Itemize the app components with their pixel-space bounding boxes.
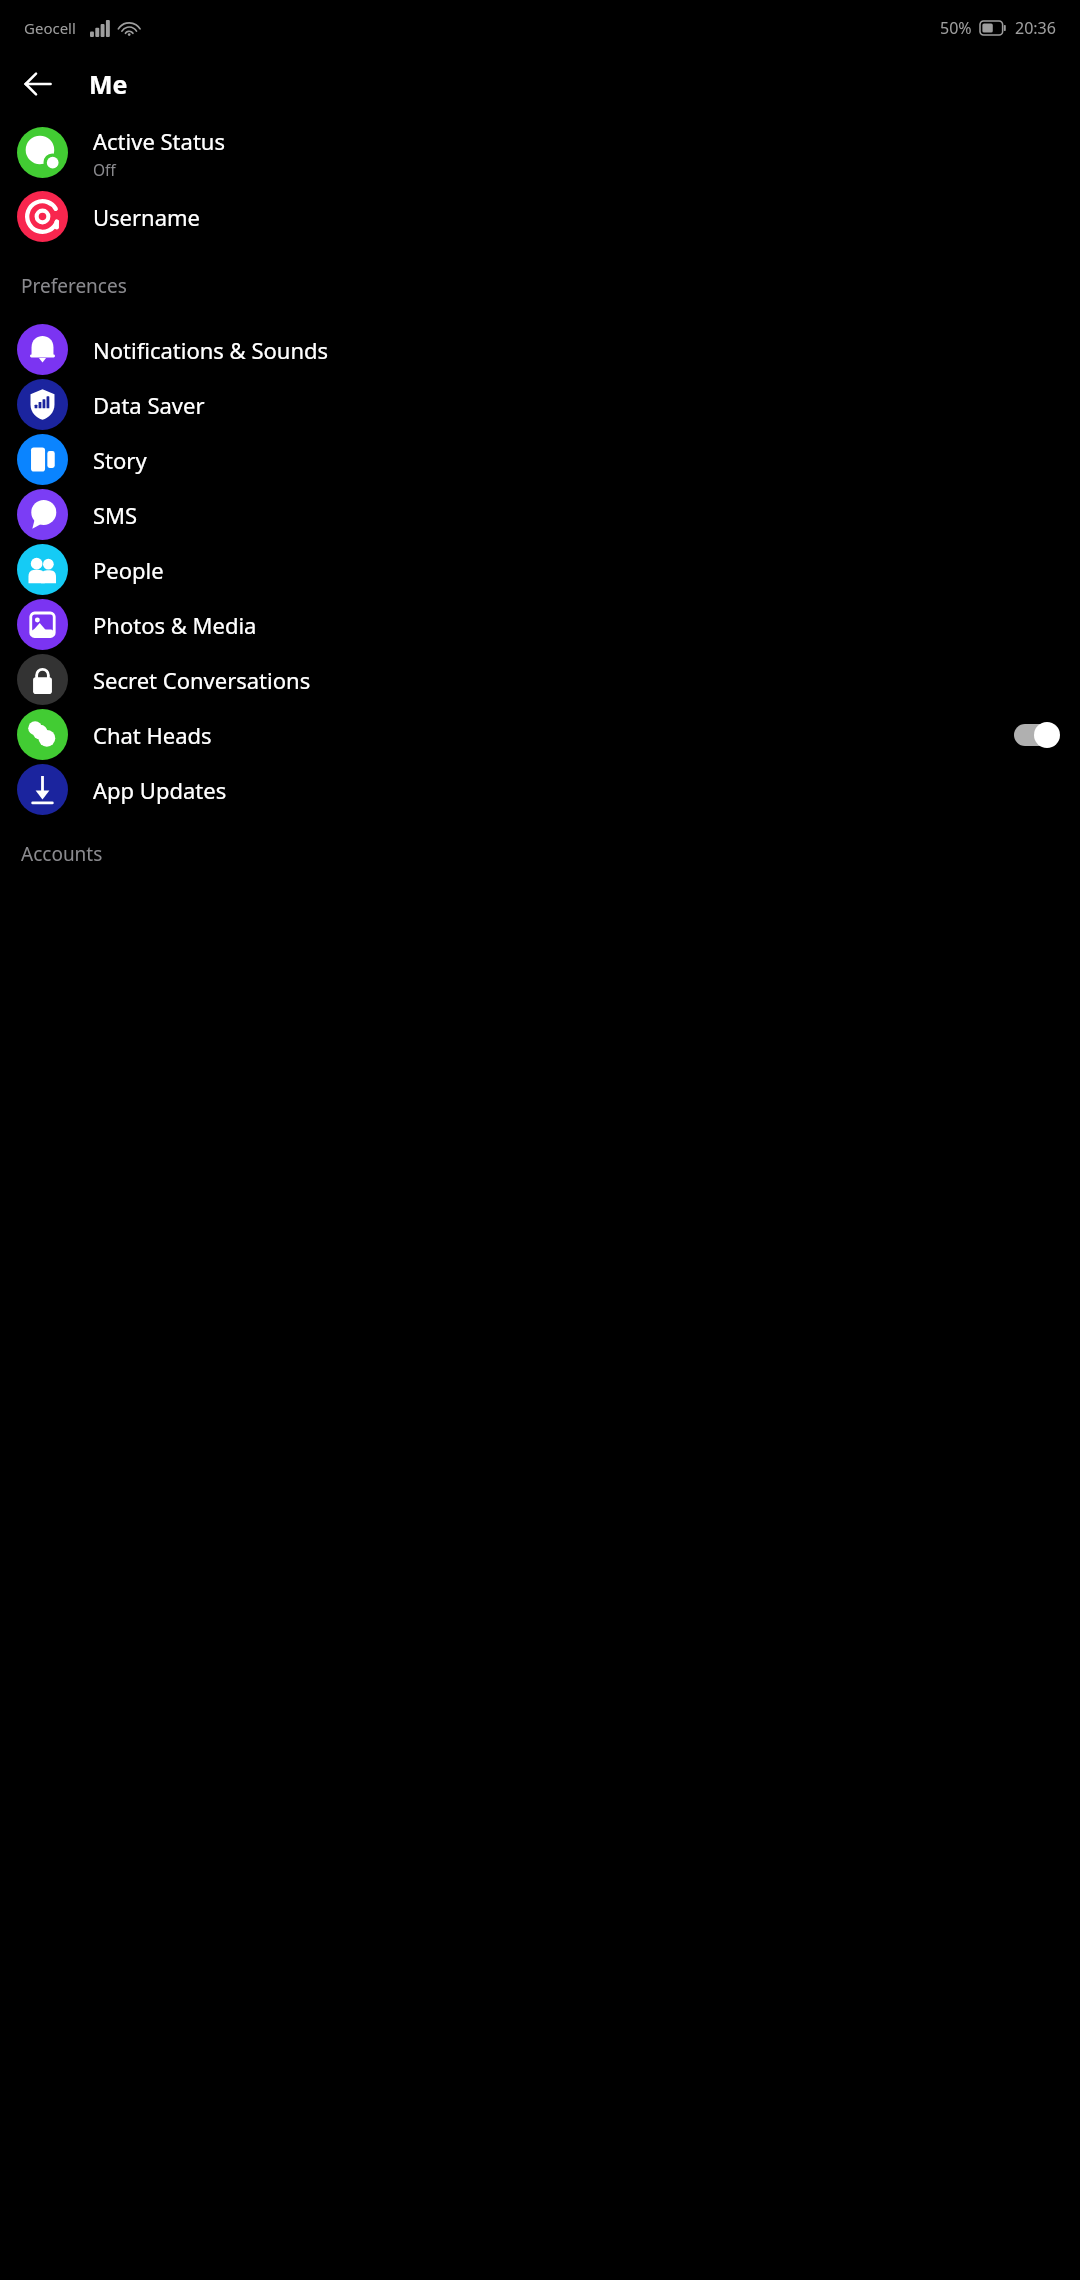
button[interactable]: Chat Heads bbox=[0, 707, 1080, 762]
button[interactable]: SMS bbox=[0, 487, 1080, 542]
staticText: Chat Heads bbox=[93, 720, 212, 750]
button[interactable]: Notifications & Sounds bbox=[0, 322, 1080, 377]
button[interactable]: Data Saver bbox=[0, 377, 1080, 432]
staticText: People bbox=[93, 555, 164, 585]
staticText: Active Status bbox=[93, 126, 225, 156]
staticText: 20:36 bbox=[1015, 17, 1056, 39]
button[interactable]: Photos & Media bbox=[0, 597, 1080, 652]
staticText: Notifications & Sounds bbox=[93, 335, 329, 365]
staticText: Me bbox=[89, 67, 128, 101]
staticText: SMS bbox=[93, 500, 138, 530]
staticText: Off bbox=[93, 159, 116, 180]
staticText: Story bbox=[93, 445, 147, 475]
button[interactable]: Active Status bbox=[0, 120, 1080, 185]
button[interactable]: Story bbox=[0, 432, 1080, 487]
staticText: Geocell bbox=[24, 18, 76, 38]
button[interactable]: Back bbox=[12, 58, 64, 110]
staticText: 50% bbox=[940, 17, 972, 39]
staticText: Username bbox=[93, 202, 201, 232]
button[interactable]: Secret Conversations bbox=[0, 652, 1080, 707]
staticText: Data Saver bbox=[93, 390, 205, 420]
staticText: Secret Conversations bbox=[93, 665, 311, 695]
button[interactable]: People bbox=[0, 542, 1080, 597]
staticText: Photos & Media bbox=[93, 610, 257, 640]
staticText: Accounts bbox=[21, 841, 103, 867]
staticText: App Updates bbox=[93, 775, 227, 805]
button[interactable]: Chat Heads toggle bbox=[1014, 722, 1060, 748]
button[interactable]: Username bbox=[0, 185, 1080, 248]
button[interactable]: App Updates bbox=[0, 762, 1080, 817]
staticText: Preferences bbox=[21, 273, 127, 299]
